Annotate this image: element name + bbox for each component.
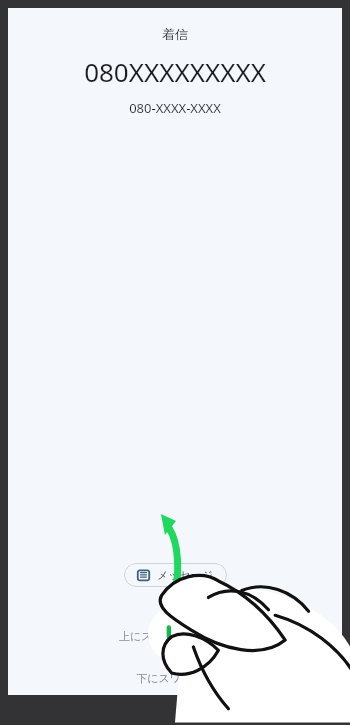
staticText: 上にスワイプして応答 xyxy=(119,629,231,643)
button[interactable]: メッセージ xyxy=(124,563,227,587)
staticText: 着信 xyxy=(162,26,188,42)
staticText: 080XXXXXXXXX xyxy=(84,54,266,89)
button[interactable]: 応答 xyxy=(148,607,202,661)
staticText: メッセージ xyxy=(157,568,214,582)
staticText: 下にスワイプし xyxy=(136,671,215,685)
staticText: 080-XXXX-XXXX xyxy=(129,99,221,117)
